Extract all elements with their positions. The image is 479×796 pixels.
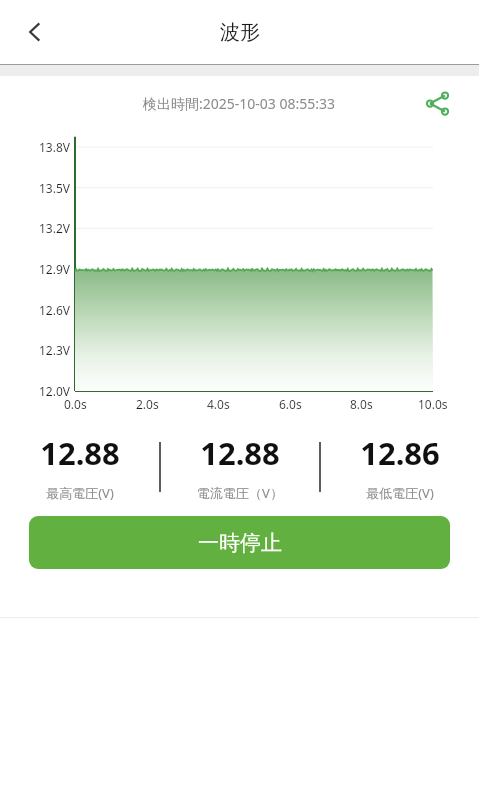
staticText: 13.8V bbox=[39, 139, 71, 155]
button[interactable]: 一時停止 bbox=[29, 516, 450, 569]
staticText: 最低電圧(V) bbox=[366, 484, 434, 502]
staticText: 検出時間:2025-10-03 08:55:33 bbox=[143, 94, 336, 113]
staticText: 最高電圧(V) bbox=[46, 484, 114, 502]
button[interactable]: Back bbox=[12, 9, 58, 55]
staticText: 13.2V bbox=[39, 220, 71, 236]
staticText: 6.0s bbox=[279, 396, 302, 412]
button[interactable]: 12.88 bbox=[161, 432, 319, 502]
button[interactable]: Share bbox=[417, 83, 457, 123]
button[interactable]: 12.88 bbox=[0, 432, 159, 502]
staticText: 0.0s bbox=[64, 396, 87, 412]
staticText: 12.88 bbox=[40, 432, 120, 474]
staticText: 12.9V bbox=[39, 261, 71, 277]
staticText: 8.0s bbox=[350, 396, 373, 412]
staticText: 13.5V bbox=[39, 180, 71, 196]
staticText: 2.0s bbox=[136, 396, 159, 412]
staticText: 12.3V bbox=[39, 342, 71, 358]
button[interactable]: 12.86 bbox=[321, 432, 479, 502]
staticText: 波形 bbox=[220, 20, 260, 45]
staticText: 12.0V bbox=[39, 383, 71, 399]
staticText: 12.6V bbox=[39, 302, 71, 318]
staticText: 10.0s bbox=[418, 396, 448, 412]
staticText: 12.88 bbox=[200, 432, 280, 474]
staticText: 4.0s bbox=[207, 396, 230, 412]
staticText: 12.86 bbox=[360, 432, 440, 474]
staticText: 電流電圧（V） bbox=[197, 484, 283, 502]
staticText: 一時停止 bbox=[198, 530, 282, 556]
